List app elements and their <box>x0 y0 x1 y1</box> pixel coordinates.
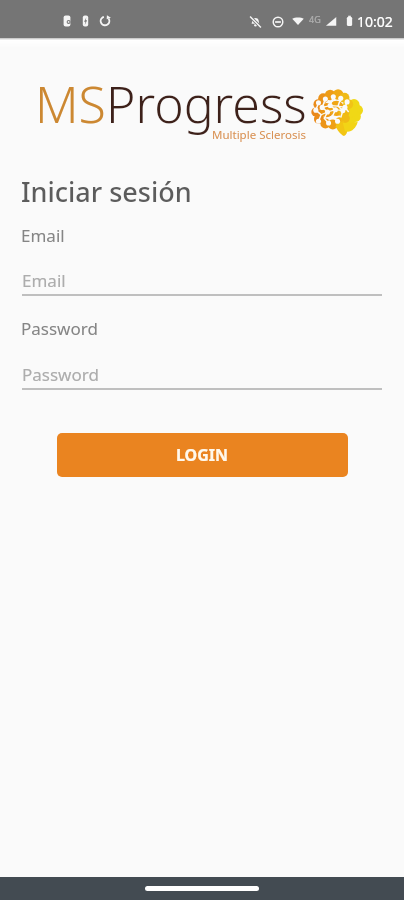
staticText: 10:02 <box>357 12 393 31</box>
button[interactable]: Password <box>22 356 382 392</box>
button[interactable]: Email <box>22 262 382 298</box>
staticText: LOGIN <box>176 444 229 466</box>
staticText: Password <box>22 363 99 386</box>
button[interactable]: Home <box>145 886 259 891</box>
button[interactable]: LOGIN <box>57 433 348 477</box>
staticText: Multiple Sclerosis <box>212 127 306 143</box>
staticText: Progress <box>106 70 307 138</box>
staticText: 4G <box>309 13 321 25</box>
staticText: Password <box>21 317 98 340</box>
staticText: MS <box>35 70 106 138</box>
staticText: Email <box>21 224 65 247</box>
staticText: Email <box>22 269 66 292</box>
staticText: Iniciar sesión <box>21 173 192 210</box>
